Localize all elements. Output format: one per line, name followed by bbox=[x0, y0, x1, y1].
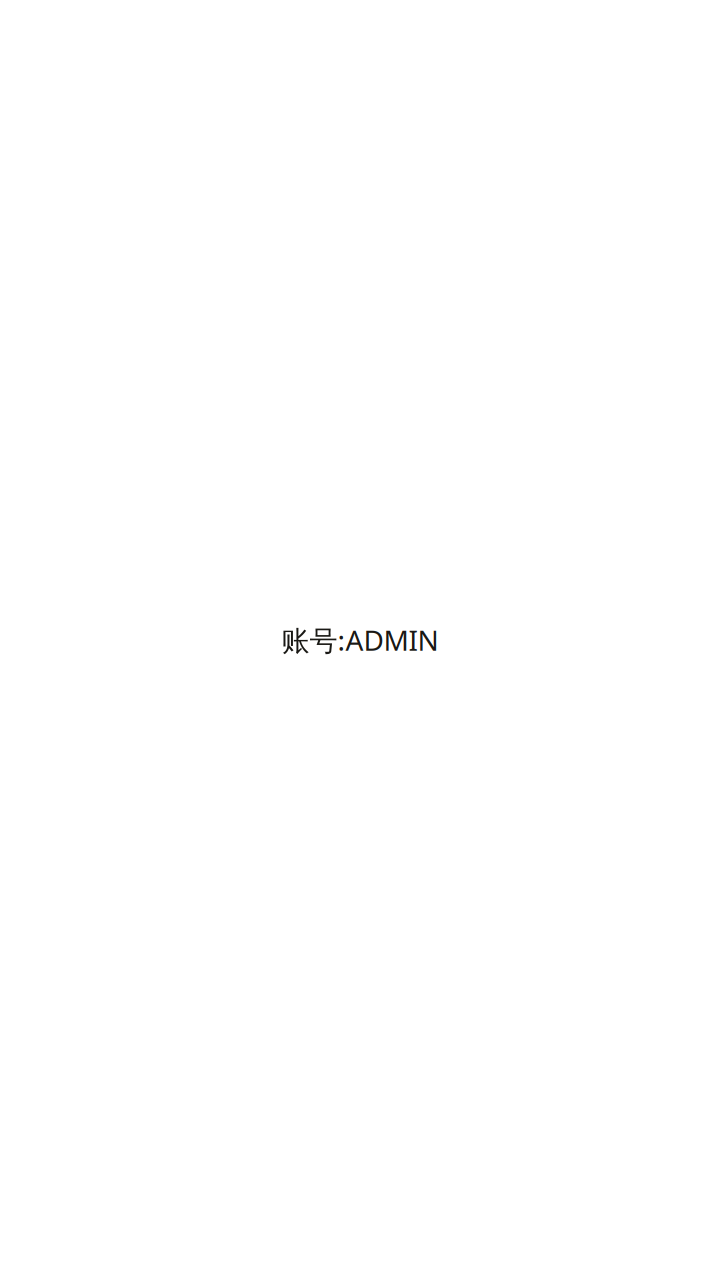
staticText: 账号:ADMIN bbox=[281, 621, 438, 659]
